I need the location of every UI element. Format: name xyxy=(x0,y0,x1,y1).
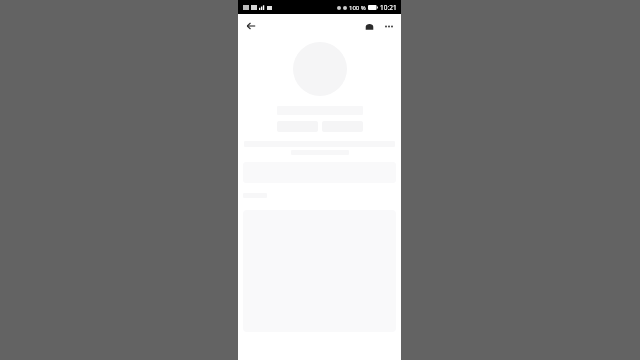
button[interactable]: Notifications xyxy=(361,18,377,34)
button[interactable]: More options xyxy=(381,18,397,34)
button[interactable]: Back xyxy=(242,17,260,35)
staticText: 10:21 xyxy=(380,3,397,12)
staticText: 100 % xyxy=(349,4,366,12)
